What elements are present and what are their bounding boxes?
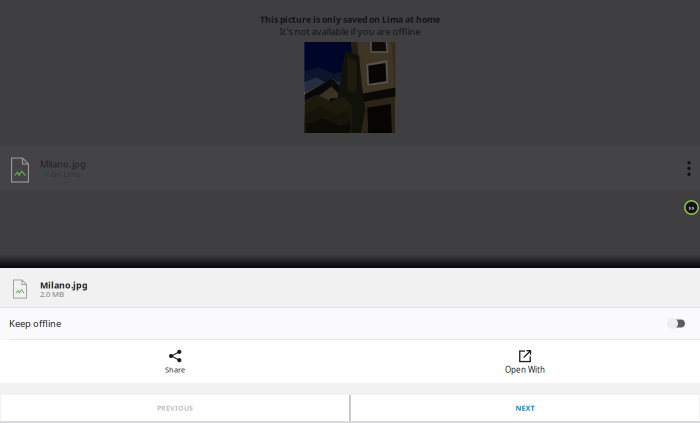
staticText: ∞ xyxy=(40,169,48,179)
staticText: Milano.jpg xyxy=(40,158,86,170)
button[interactable]: More options xyxy=(678,145,700,190)
staticText: Keep offline xyxy=(9,317,61,330)
staticText: This picture is only saved on Lima at ho… xyxy=(260,14,440,25)
button[interactable]: Open With xyxy=(350,340,700,383)
button[interactable]: PREVIOUS xyxy=(1,395,349,421)
staticText: ›› xyxy=(688,202,694,212)
staticText: 2.0 MB xyxy=(40,289,64,299)
staticText: PREVIOUS xyxy=(157,403,193,413)
staticText: NEXT xyxy=(515,403,534,413)
button[interactable]: Keep offline xyxy=(0,308,700,339)
staticText: Share xyxy=(165,365,185,375)
button[interactable]: Share xyxy=(0,340,350,383)
staticText: Milano.jpg xyxy=(40,279,88,291)
staticText: It's not available if you are offline xyxy=(279,25,420,38)
button[interactable]: NEXT xyxy=(351,395,699,421)
staticText: Open With xyxy=(505,364,545,375)
staticText: On Lima xyxy=(50,169,80,179)
